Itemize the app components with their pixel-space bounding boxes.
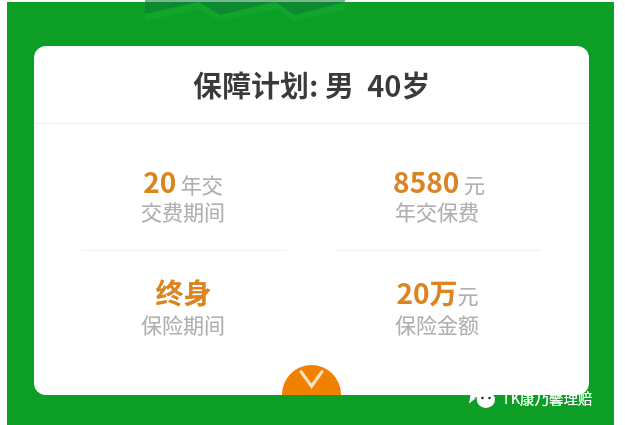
staticText: 保险金额 — [395, 309, 479, 339]
button[interactable]: 20万元 — [307, 270, 567, 314]
staticText: 20万元 — [396, 272, 479, 313]
staticText: 保障计划: 男 40岁 — [193, 63, 431, 105]
button[interactable]: 8580 元 — [309, 159, 569, 203]
staticText: 交费期间 — [141, 196, 225, 226]
staticText: TK康乃馨理赔 — [502, 387, 593, 408]
button[interactable]: 保障计划: 男 40岁 — [34, 46, 589, 121]
staticText: 保险期间 — [141, 309, 225, 339]
staticText: 终身 — [155, 272, 212, 313]
staticText: 年交保费 — [395, 196, 479, 226]
staticText: 8580 元 — [393, 161, 485, 202]
staticText: 20 年交 — [143, 161, 223, 202]
button[interactable]: TK康乃馨理赔 WeChat official account — [469, 386, 593, 408]
button[interactable]: 20 年交 — [53, 159, 313, 203]
button[interactable]: 终身 — [53, 270, 313, 314]
button[interactable]: Show more plan details — [282, 365, 341, 395]
